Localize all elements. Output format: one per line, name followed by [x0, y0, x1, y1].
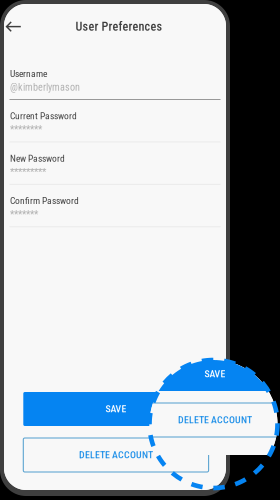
staticText: SAVE: [204, 368, 225, 380]
staticText: *******: [109, 173, 137, 185]
staticText: *********: [10, 166, 46, 178]
staticText: @kimberlymason: [10, 81, 80, 93]
button[interactable]: DELETE ACCOUNT: [122, 403, 280, 437]
staticText: ********: [109, 89, 141, 101]
button[interactable]: SAVE: [23, 392, 209, 426]
staticText: ********: [10, 124, 42, 136]
button[interactable]: SAVE: [122, 357, 280, 391]
staticText: DELETE ACCOUNT: [79, 449, 153, 461]
staticText: *******: [10, 208, 38, 220]
staticText: Current Password: [10, 110, 77, 122]
staticText: SAVE: [105, 403, 126, 415]
button[interactable]: Back: [1, 15, 27, 39]
staticText: DELETE ACCOUNT: [178, 414, 252, 426]
staticText: New Password: [10, 153, 65, 164]
staticText: Username: [10, 68, 47, 79]
staticText: Confirm Password: [10, 195, 79, 206]
staticText: User Preferences: [75, 20, 162, 34]
button[interactable]: DELETE ACCOUNT: [23, 438, 209, 472]
